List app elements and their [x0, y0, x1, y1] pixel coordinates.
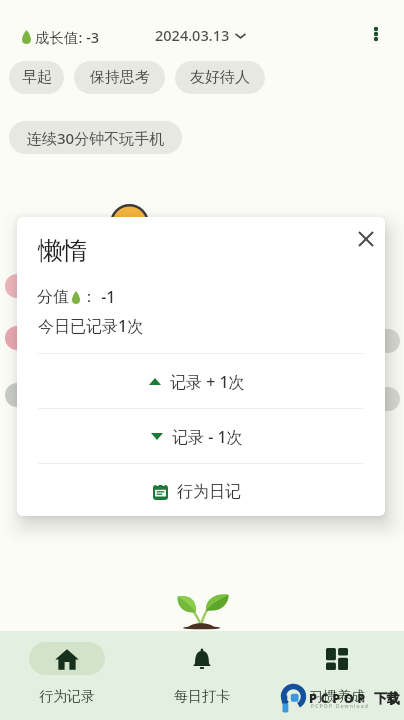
staticText: PCPOP Download [311, 703, 370, 710]
button[interactable]: 早起 [9, 61, 64, 94]
staticText: ： [81, 287, 97, 307]
button[interactable]: 保持思考 [74, 61, 165, 94]
button[interactable]: Close [351, 224, 381, 254]
staticText: 懒惰 [38, 235, 87, 266]
button[interactable]: 行为日记 [17, 464, 381, 516]
staticText: 记录 - 1次 [172, 426, 243, 448]
button[interactable]: 2024.03.13 [155, 25, 246, 45]
staticText: 每日打卡 [174, 688, 230, 706]
staticText: 分值 [37, 287, 69, 307]
staticText: 2024.03.13 [155, 25, 230, 45]
staticText: 友好待人 [190, 68, 250, 87]
button[interactable]: More options [362, 20, 390, 48]
staticText: 早起 [22, 68, 52, 87]
button[interactable]: 友好待人 [175, 61, 265, 94]
staticText: 成长值: -3 [35, 27, 100, 47]
staticText: PCPOP [309, 690, 369, 707]
staticText: 下载 [374, 690, 400, 706]
staticText: 行为记录 [39, 688, 95, 706]
staticText: 连续30分钟不玩手机 [27, 128, 165, 148]
staticText: 行为日记 [177, 482, 241, 502]
staticText: 保持思考 [90, 68, 150, 87]
staticText: 记录 + 1次 [170, 371, 245, 393]
staticText: 习惯养成 [309, 688, 365, 706]
button[interactable]: 连续30分钟不玩手机 [9, 121, 182, 154]
button[interactable]: 每日打卡 [134, 631, 269, 720]
button[interactable]: 记录 - 1次 [17, 409, 381, 464]
button[interactable]: 记录 + 1次 [17, 354, 381, 409]
button[interactable]: 习惯养成 [269, 631, 404, 720]
staticText: -1 [97, 286, 116, 308]
staticText: 今日已记录1次 [38, 315, 144, 337]
button[interactable]: 行为记录 [0, 631, 134, 720]
